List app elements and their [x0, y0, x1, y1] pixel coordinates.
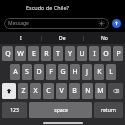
- button[interactable]: U: [77, 46, 87, 61]
- button[interactable]: F: [46, 64, 56, 80]
- staticText: P: [116, 49, 121, 59]
- staticText: E: [32, 49, 36, 59]
- button[interactable]: Backspace: [108, 83, 123, 99]
- staticText: T: [56, 49, 60, 59]
- button[interactable]: 123: [2, 102, 27, 118]
- staticText: S: [25, 67, 29, 77]
- button[interactable]: space: [29, 102, 92, 118]
- button[interactable]: H: [70, 64, 80, 80]
- button[interactable]: L: [106, 64, 116, 80]
- button[interactable]: G: [58, 64, 68, 80]
- button[interactable]: W: [15, 46, 26, 61]
- staticText: Message: [8, 20, 98, 27]
- staticText: O: [103, 49, 109, 59]
- button[interactable]: Z: [18, 83, 28, 99]
- button[interactable]: Send: [112, 19, 121, 28]
- button[interactable]: B: [69, 83, 80, 99]
- button[interactable]: E: [28, 46, 39, 61]
- button[interactable]: De: [42, 32, 83, 44]
- button[interactable]: Audio message: [98, 20, 105, 27]
- staticText: L: [109, 67, 113, 77]
- staticText: Q: [5, 49, 11, 59]
- button[interactable]: K: [94, 64, 104, 80]
- staticText: Escudo de Chile?: [26, 4, 69, 11]
- staticText: No: [101, 35, 108, 42]
- button[interactable]: V: [56, 83, 67, 99]
- button[interactable]: N: [82, 83, 93, 99]
- staticText: D: [36, 67, 42, 77]
- button[interactable]: M: [95, 83, 106, 99]
- staticText: U: [79, 49, 85, 59]
- staticText: B: [72, 86, 77, 96]
- staticText: I: [20, 35, 22, 42]
- staticText: 123: [10, 107, 19, 114]
- staticText: W: [17, 49, 24, 59]
- staticText: space: [54, 107, 68, 114]
- button[interactable]: S: [22, 64, 32, 80]
- staticText: De: [59, 35, 66, 42]
- staticText: R: [44, 49, 49, 59]
- staticText: A: [13, 67, 18, 77]
- button[interactable]: T: [53, 46, 63, 61]
- staticText: Z: [21, 86, 26, 96]
- button[interactable]: R: [41, 46, 51, 61]
- staticText: G: [60, 67, 66, 77]
- button[interactable]: D: [34, 64, 44, 80]
- button[interactable]: Y: [65, 46, 75, 61]
- button[interactable]: I: [89, 46, 99, 61]
- button[interactable]: O: [101, 46, 111, 61]
- staticText: K: [97, 67, 102, 77]
- button[interactable]: P: [113, 46, 123, 61]
- staticText: Y: [68, 49, 72, 59]
- staticText: J: [86, 67, 88, 77]
- staticText: M: [97, 86, 104, 96]
- button[interactable]: I: [0, 32, 41, 44]
- button[interactable]: Message: [4, 18, 109, 29]
- button[interactable]: return: [94, 102, 123, 118]
- button[interactable]: Shift: [2, 83, 16, 99]
- staticText: H: [72, 67, 78, 77]
- button[interactable]: J: [82, 64, 92, 80]
- staticText: X: [33, 86, 38, 96]
- staticText: C: [46, 86, 51, 96]
- button[interactable]: X: [30, 83, 41, 99]
- staticText: I: [93, 49, 96, 59]
- button[interactable]: A: [10, 64, 20, 80]
- button[interactable]: C: [43, 83, 54, 99]
- staticText: F: [49, 67, 53, 77]
- staticText: V: [59, 86, 64, 96]
- button[interactable]: Q: [2, 46, 13, 61]
- staticText: return: [101, 107, 116, 114]
- button[interactable]: No: [84, 32, 125, 44]
- staticText: N: [85, 86, 91, 96]
